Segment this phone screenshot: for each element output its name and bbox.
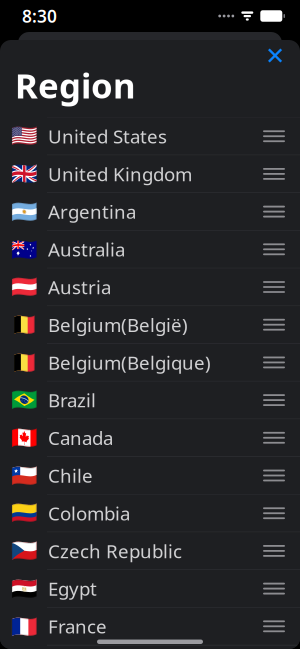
button[interactable]: 🇦🇷 (0, 193, 300, 231)
staticText: 🇦🇹 (11, 275, 38, 299)
button[interactable]: 🇧🇷 (0, 382, 300, 419)
staticText: 🇪🇬 (11, 576, 38, 601)
staticText: Czech Republic (48, 538, 182, 563)
staticText: 🇺🇸 (11, 124, 38, 148)
staticText: Canada (48, 425, 113, 450)
staticText: Argentina (48, 199, 136, 224)
staticText: Colombia (48, 501, 130, 526)
staticText: 🇨🇿 (11, 539, 38, 563)
staticText: Belgium(België) (48, 312, 188, 337)
button[interactable]: 🇧🇪 (0, 344, 300, 382)
button[interactable]: 🇧🇪 (0, 306, 300, 344)
staticText: 🇫🇷 (11, 614, 38, 638)
button[interactable]: 🇨🇿 (0, 532, 300, 570)
staticText: 🇧🇪 (11, 312, 38, 337)
staticText: Egypt (48, 576, 97, 601)
button[interactable]: 🇦🇹 (0, 268, 300, 306)
staticText: United Kingdom (48, 161, 192, 186)
staticText: 🇦🇺 (11, 237, 38, 261)
staticText: Chile (48, 463, 93, 488)
staticText: Belgium(Belgique) (48, 350, 211, 375)
staticText: 🇨🇴 (11, 501, 38, 525)
staticText: Brazil (48, 388, 96, 412)
button[interactable]: 🇨🇱 (0, 457, 300, 495)
staticText: 🇧🇷 (11, 388, 38, 412)
button[interactable]: 🇨🇦 (0, 419, 300, 457)
staticText: France (48, 614, 107, 639)
staticText: Australia (48, 237, 125, 262)
staticText: 🇦🇷 (11, 199, 38, 224)
staticText: 🇬🇧 (11, 162, 38, 186)
staticText: 🇧🇪 (11, 350, 38, 375)
staticText: 🇨🇱 (11, 463, 38, 488)
staticText: ✕ (265, 42, 285, 70)
staticText: United States (48, 124, 167, 149)
button[interactable]: 🇺🇸 (0, 118, 300, 155)
button[interactable]: 🇬🇧 (0, 155, 300, 193)
button[interactable]: 🇪🇬 (0, 570, 300, 608)
staticText: Region (15, 62, 136, 108)
staticText: Austria (48, 275, 111, 299)
button[interactable]: 🇨🇴 (0, 495, 300, 532)
staticText: 8:30 (22, 4, 57, 27)
button[interactable]: 🇦🇺 (0, 231, 300, 268)
staticText: 🇨🇦 (11, 426, 38, 450)
button[interactable]: 🇫🇷 (0, 608, 300, 645)
button[interactable]: Close (258, 41, 292, 71)
